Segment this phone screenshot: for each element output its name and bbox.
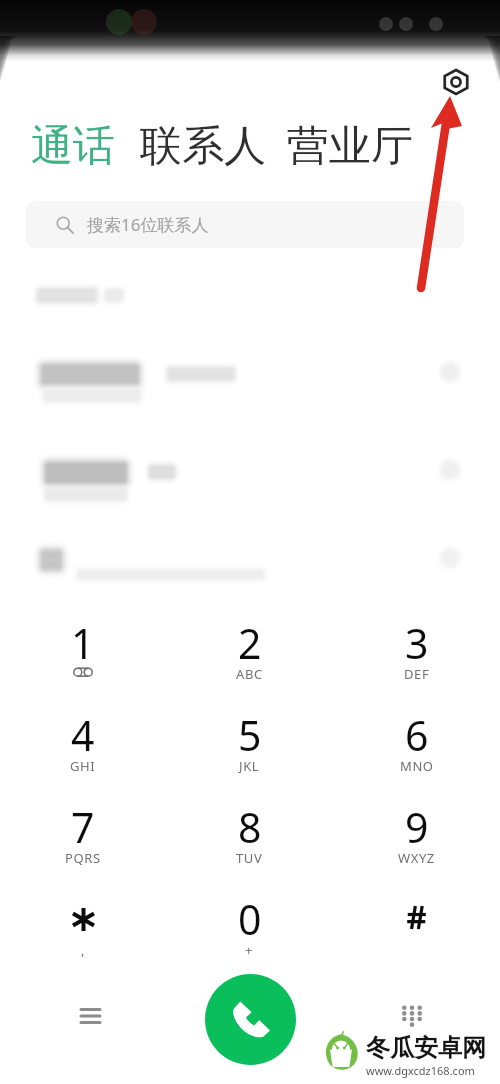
staticText: 联系人 xyxy=(140,120,266,173)
button[interactable]: 营业厅 xyxy=(287,120,413,173)
staticText: www.dgxcdz168.com xyxy=(366,1063,475,1078)
staticText: DEF xyxy=(404,665,430,683)
staticText: JKL xyxy=(239,757,260,775)
button[interactable]: 通话 xyxy=(31,120,115,173)
staticText: MNO xyxy=(400,757,434,775)
staticText: 9 xyxy=(405,799,429,855)
staticText: 冬瓜安卓网 xyxy=(366,1033,486,1063)
button[interactable]: 2 xyxy=(166,615,333,671)
button[interactable]: Call xyxy=(205,974,296,1065)
button[interactable]: 搜索16位联系人 xyxy=(26,201,464,248)
button[interactable] xyxy=(333,891,500,914)
staticText: 通话 xyxy=(31,120,115,173)
button[interactable]: 1 xyxy=(0,615,166,671)
staticText: 搜索16位联系人 xyxy=(87,213,209,236)
staticText: , xyxy=(81,941,86,959)
staticText: ABC xyxy=(236,665,263,683)
staticText: 8 xyxy=(238,799,262,855)
staticText: 2 xyxy=(238,615,262,671)
staticText: 4 xyxy=(71,707,95,763)
staticText: 5 xyxy=(238,707,262,763)
button[interactable]: 3 xyxy=(333,615,500,671)
staticText: 7 xyxy=(71,799,95,855)
staticText: WXYZ xyxy=(398,849,435,867)
button[interactable]: Settings xyxy=(433,59,478,104)
button[interactable]: 9 xyxy=(333,799,500,855)
staticText: + xyxy=(245,941,254,959)
button[interactable]: Call log menu xyxy=(62,988,118,1044)
button[interactable]: Dialpad xyxy=(384,988,440,1044)
button[interactable]: 8 xyxy=(166,799,333,855)
staticText: 3 xyxy=(405,615,429,671)
button[interactable]: 0 xyxy=(166,891,333,947)
staticText: GHI xyxy=(70,757,96,775)
staticText: 0 xyxy=(238,891,262,947)
button[interactable]: , xyxy=(0,891,166,914)
button[interactable]: 7 xyxy=(0,799,166,855)
button[interactable]: 联系人 xyxy=(140,120,266,173)
staticText: PQRS xyxy=(65,849,101,867)
button[interactable]: 6 xyxy=(333,707,500,763)
staticText: 1 xyxy=(71,615,95,671)
staticText: TUV xyxy=(236,849,263,867)
button[interactable]: 5 xyxy=(166,707,333,763)
staticText: 营业厅 xyxy=(287,120,413,173)
staticText: 6 xyxy=(405,707,429,763)
button[interactable]: 4 xyxy=(0,707,166,763)
